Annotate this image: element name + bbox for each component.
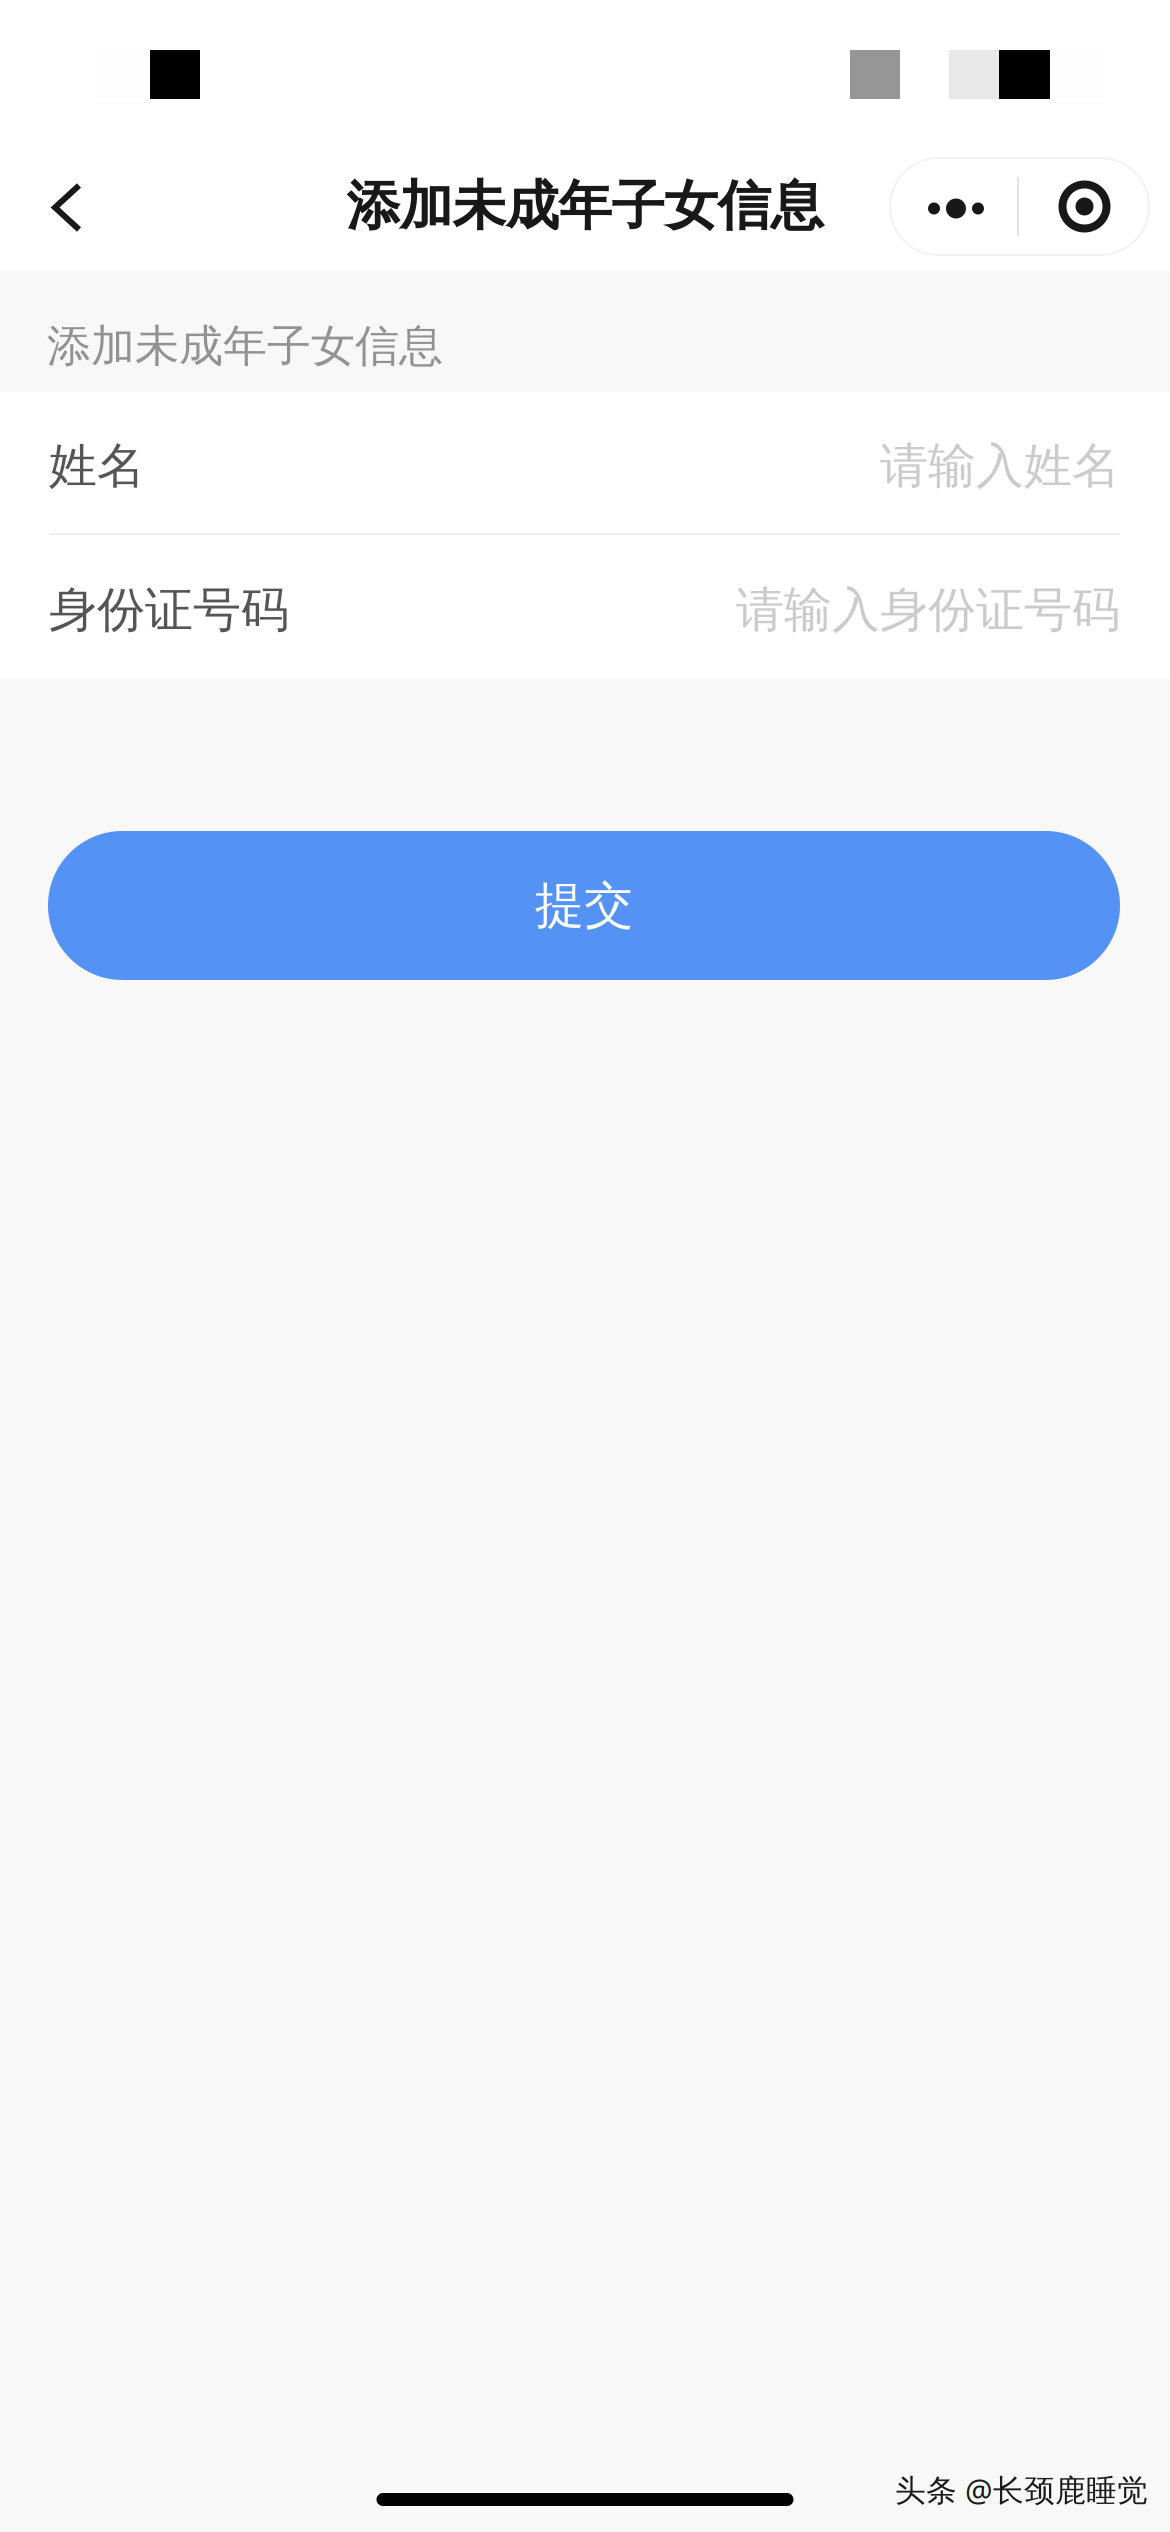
button[interactable]: 身份证号码 (0, 535, 1170, 678)
staticText: 请输入姓名 (880, 436, 1120, 495)
button[interactable]: 提交 (48, 831, 1120, 980)
button[interactable]: Back (0, 135, 134, 270)
staticText: 头条 @长颈鹿睡觉 (895, 2469, 1148, 2510)
button[interactable]: More options and close (890, 150, 1149, 255)
button[interactable]: 姓名 (0, 392, 1170, 533)
staticText: 身份证号码 (49, 580, 289, 639)
staticText: 添加未成年子女信息 (346, 173, 823, 239)
staticText: 提交 (535, 875, 633, 936)
staticText: 添加未成年子女信息 (47, 319, 443, 373)
staticText: 姓名 (49, 436, 145, 495)
staticText: 请输入身份证号码 (736, 580, 1120, 639)
